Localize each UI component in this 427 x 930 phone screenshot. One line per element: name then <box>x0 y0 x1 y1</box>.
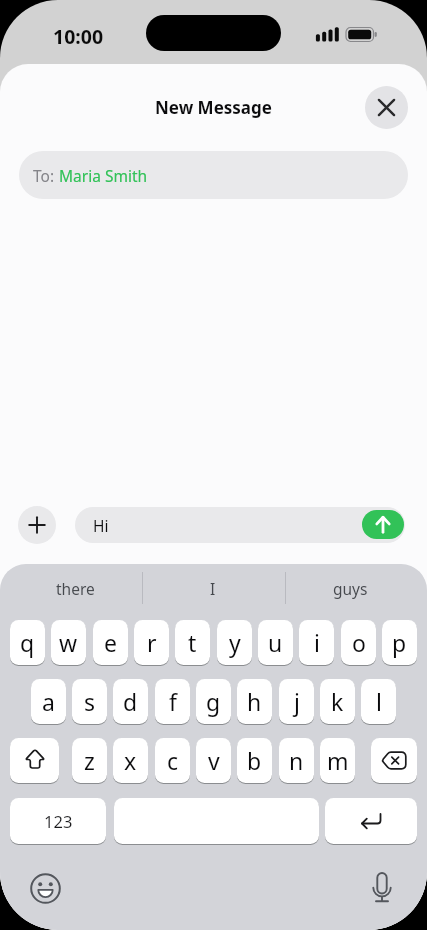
button[interactable]: j <box>279 679 314 724</box>
button[interactable]: e <box>93 620 128 665</box>
button[interactable] <box>371 738 417 783</box>
staticText: o <box>352 627 366 658</box>
staticText: c <box>167 745 179 776</box>
button[interactable] <box>27 870 64 907</box>
button[interactable]: x <box>113 738 148 783</box>
button[interactable]: q <box>10 620 45 665</box>
button[interactable] <box>363 867 401 909</box>
staticText: h <box>247 686 262 717</box>
button[interactable]: h <box>237 679 272 724</box>
staticText: Maria Smith <box>59 165 148 186</box>
button[interactable]: y <box>217 620 252 665</box>
staticText: f <box>169 686 177 717</box>
staticText: k <box>331 686 344 717</box>
staticText: I <box>210 578 216 599</box>
button[interactable]: b <box>237 738 272 783</box>
button[interactable]: f <box>155 679 190 724</box>
button[interactable]: s <box>72 679 107 724</box>
staticText: 10:00 <box>53 23 104 47</box>
button[interactable]: t <box>175 620 210 665</box>
staticText: v <box>208 745 220 776</box>
button[interactable]: To: <box>19 151 408 199</box>
staticText: 123 <box>44 810 73 832</box>
button[interactable]: k <box>320 679 355 724</box>
staticText: s <box>84 686 96 717</box>
staticText: d <box>123 686 138 717</box>
button[interactable]: o <box>341 620 376 665</box>
staticText: n <box>289 745 304 776</box>
staticText: To: <box>33 165 59 186</box>
staticText: x <box>124 745 137 776</box>
staticText: New Message <box>155 96 272 119</box>
button[interactable]: Hi <box>75 507 405 543</box>
button[interactable]: c <box>155 738 190 783</box>
button[interactable]: a <box>31 679 66 724</box>
staticText: a <box>42 686 55 717</box>
button[interactable]: w <box>51 620 86 665</box>
button[interactable]: 123 <box>10 798 106 844</box>
button[interactable]: p <box>382 620 417 665</box>
button[interactable]: g <box>196 679 231 724</box>
button[interactable]: i <box>299 620 334 665</box>
button[interactable]: there <box>15 572 135 604</box>
button[interactable]: n <box>279 738 314 783</box>
button[interactable]: l <box>361 679 396 724</box>
button[interactable]: r <box>134 620 169 665</box>
button[interactable]: v <box>196 738 231 783</box>
staticText: y <box>229 627 241 658</box>
staticText: p <box>392 627 407 658</box>
button[interactable]: z <box>72 738 107 783</box>
staticText: m <box>327 745 349 776</box>
button[interactable]: u <box>258 620 293 665</box>
staticText: i <box>314 627 320 658</box>
button[interactable]: m <box>320 738 355 783</box>
button[interactable] <box>362 510 404 539</box>
staticText: g <box>206 686 221 717</box>
staticText: t <box>188 627 197 658</box>
staticText: e <box>104 627 117 658</box>
staticText: Hi <box>93 515 109 536</box>
button[interactable]: d <box>113 679 148 724</box>
button[interactable] <box>10 738 59 783</box>
staticText: z <box>84 745 95 776</box>
staticText: u <box>268 627 283 658</box>
button[interactable] <box>18 506 56 544</box>
staticText: guys <box>333 578 368 599</box>
button[interactable] <box>325 798 417 844</box>
staticText: r <box>147 627 157 658</box>
button[interactable] <box>365 86 408 129</box>
staticText: l <box>376 686 382 717</box>
button[interactable]: guys <box>290 572 410 604</box>
staticText: there <box>56 578 95 599</box>
button[interactable]: I <box>153 572 273 604</box>
staticText: j <box>294 686 300 717</box>
staticText: b <box>247 745 262 776</box>
staticText: q <box>20 627 35 658</box>
staticText: w <box>59 627 78 658</box>
button[interactable] <box>114 798 319 844</box>
